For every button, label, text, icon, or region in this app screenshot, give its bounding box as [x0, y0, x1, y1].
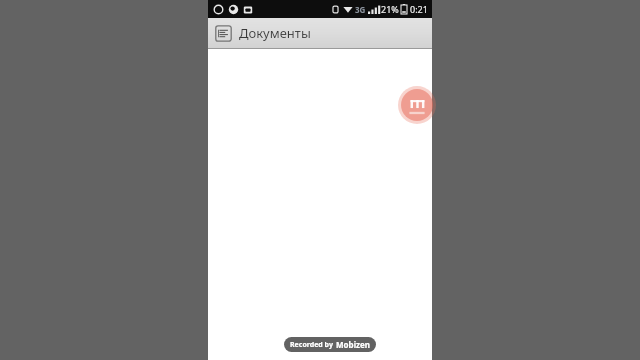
staticText: Документы: [239, 24, 311, 42]
staticText: 3G: [355, 4, 366, 15]
staticText: Recorded by: [290, 340, 333, 350]
staticText: Mobizen: [336, 339, 370, 350]
staticText: 0:21: [410, 3, 428, 15]
staticText: 21%: [381, 3, 399, 15]
button[interactable]: Документы: [208, 18, 432, 48]
